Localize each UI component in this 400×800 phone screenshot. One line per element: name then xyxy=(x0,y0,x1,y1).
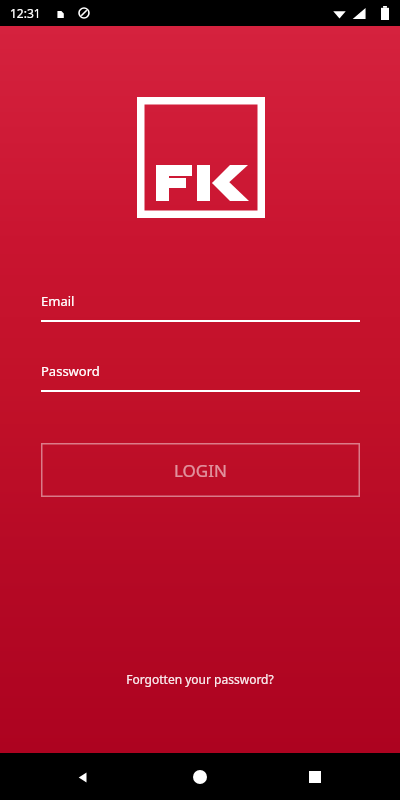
staticText: Password xyxy=(41,362,100,380)
button[interactable]: Recent apps xyxy=(300,762,330,792)
button[interactable]: Forgotten your password? xyxy=(0,668,400,690)
button[interactable]: Email xyxy=(41,288,360,322)
button[interactable]: Back xyxy=(68,762,98,792)
staticText: 12:31 xyxy=(10,5,41,21)
button[interactable]: LOGIN xyxy=(41,443,360,497)
staticText: Forgotten your password? xyxy=(126,671,274,687)
staticText: Email xyxy=(41,292,75,310)
staticText: LOGIN xyxy=(174,459,227,482)
button[interactable]: Password xyxy=(41,358,360,392)
button[interactable]: Home xyxy=(185,762,215,792)
